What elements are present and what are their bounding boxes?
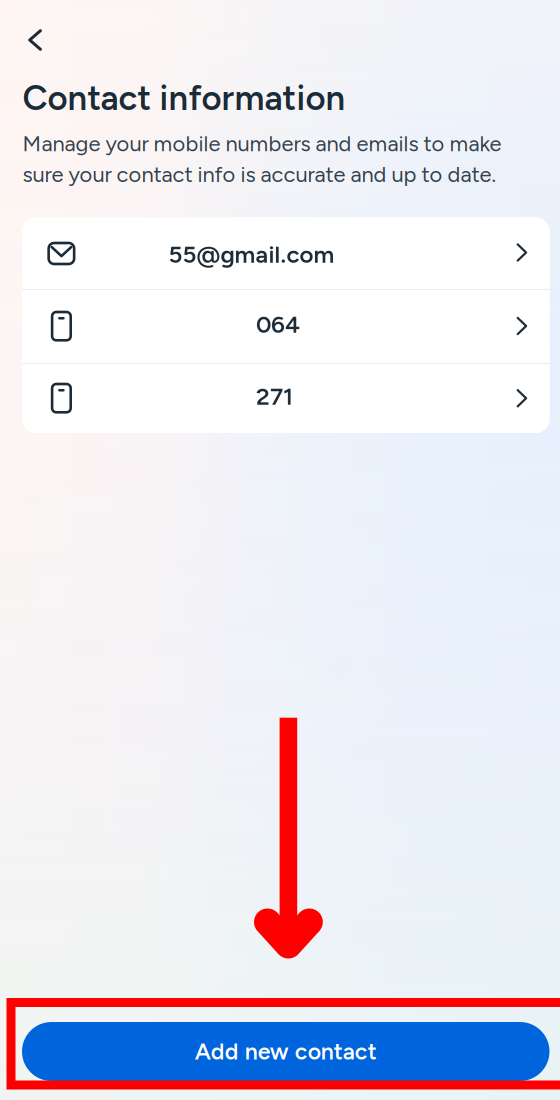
staticText: 271 bbox=[256, 382, 293, 411]
staticText: Contact information bbox=[22, 77, 345, 119]
button[interactable]: 271 bbox=[22, 364, 549, 433]
staticText: Add new contact bbox=[195, 1038, 377, 1065]
staticText: 064 bbox=[256, 310, 300, 339]
staticText: 55@gmail.com bbox=[168, 240, 334, 269]
staticText: Manage your mobile numbers and emails to… bbox=[22, 130, 501, 157]
button[interactable]: 55@gmail.com bbox=[22, 217, 549, 289]
button[interactable]: Back bbox=[12, 16, 58, 64]
staticText: sure your contact info is accurate and u… bbox=[22, 161, 496, 187]
button[interactable]: Add new contact bbox=[22, 1022, 549, 1081]
button[interactable]: 064 bbox=[22, 290, 549, 363]
